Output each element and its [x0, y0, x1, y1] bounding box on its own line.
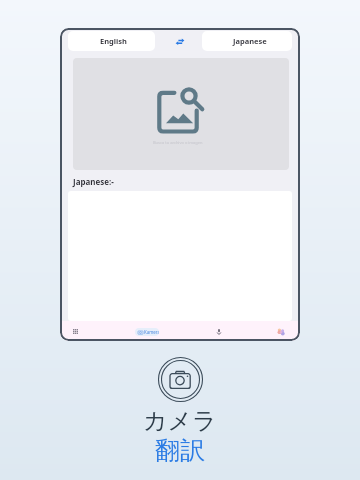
staticText: Kamera [144, 329, 159, 335]
button[interactable]: Kamera [135, 328, 159, 336]
button[interactable]: Camera [158, 357, 203, 402]
button[interactable]: Japanese [202, 31, 292, 51]
staticText: English [100, 36, 127, 46]
button[interactable]: Assistant [274, 325, 288, 339]
button[interactable]: Gallery [68, 324, 83, 339]
staticText: Busca tu archivo o imagen [153, 140, 203, 145]
staticText: カメラ [143, 406, 217, 436]
staticText: 翻訳 [155, 435, 205, 466]
button[interactable]: Microphone [212, 325, 226, 339]
button[interactable]: Swap languages [170, 30, 190, 50]
staticText: Japanese [233, 36, 267, 46]
button[interactable]: English [68, 31, 155, 51]
staticText: Japanese:- [73, 176, 114, 187]
